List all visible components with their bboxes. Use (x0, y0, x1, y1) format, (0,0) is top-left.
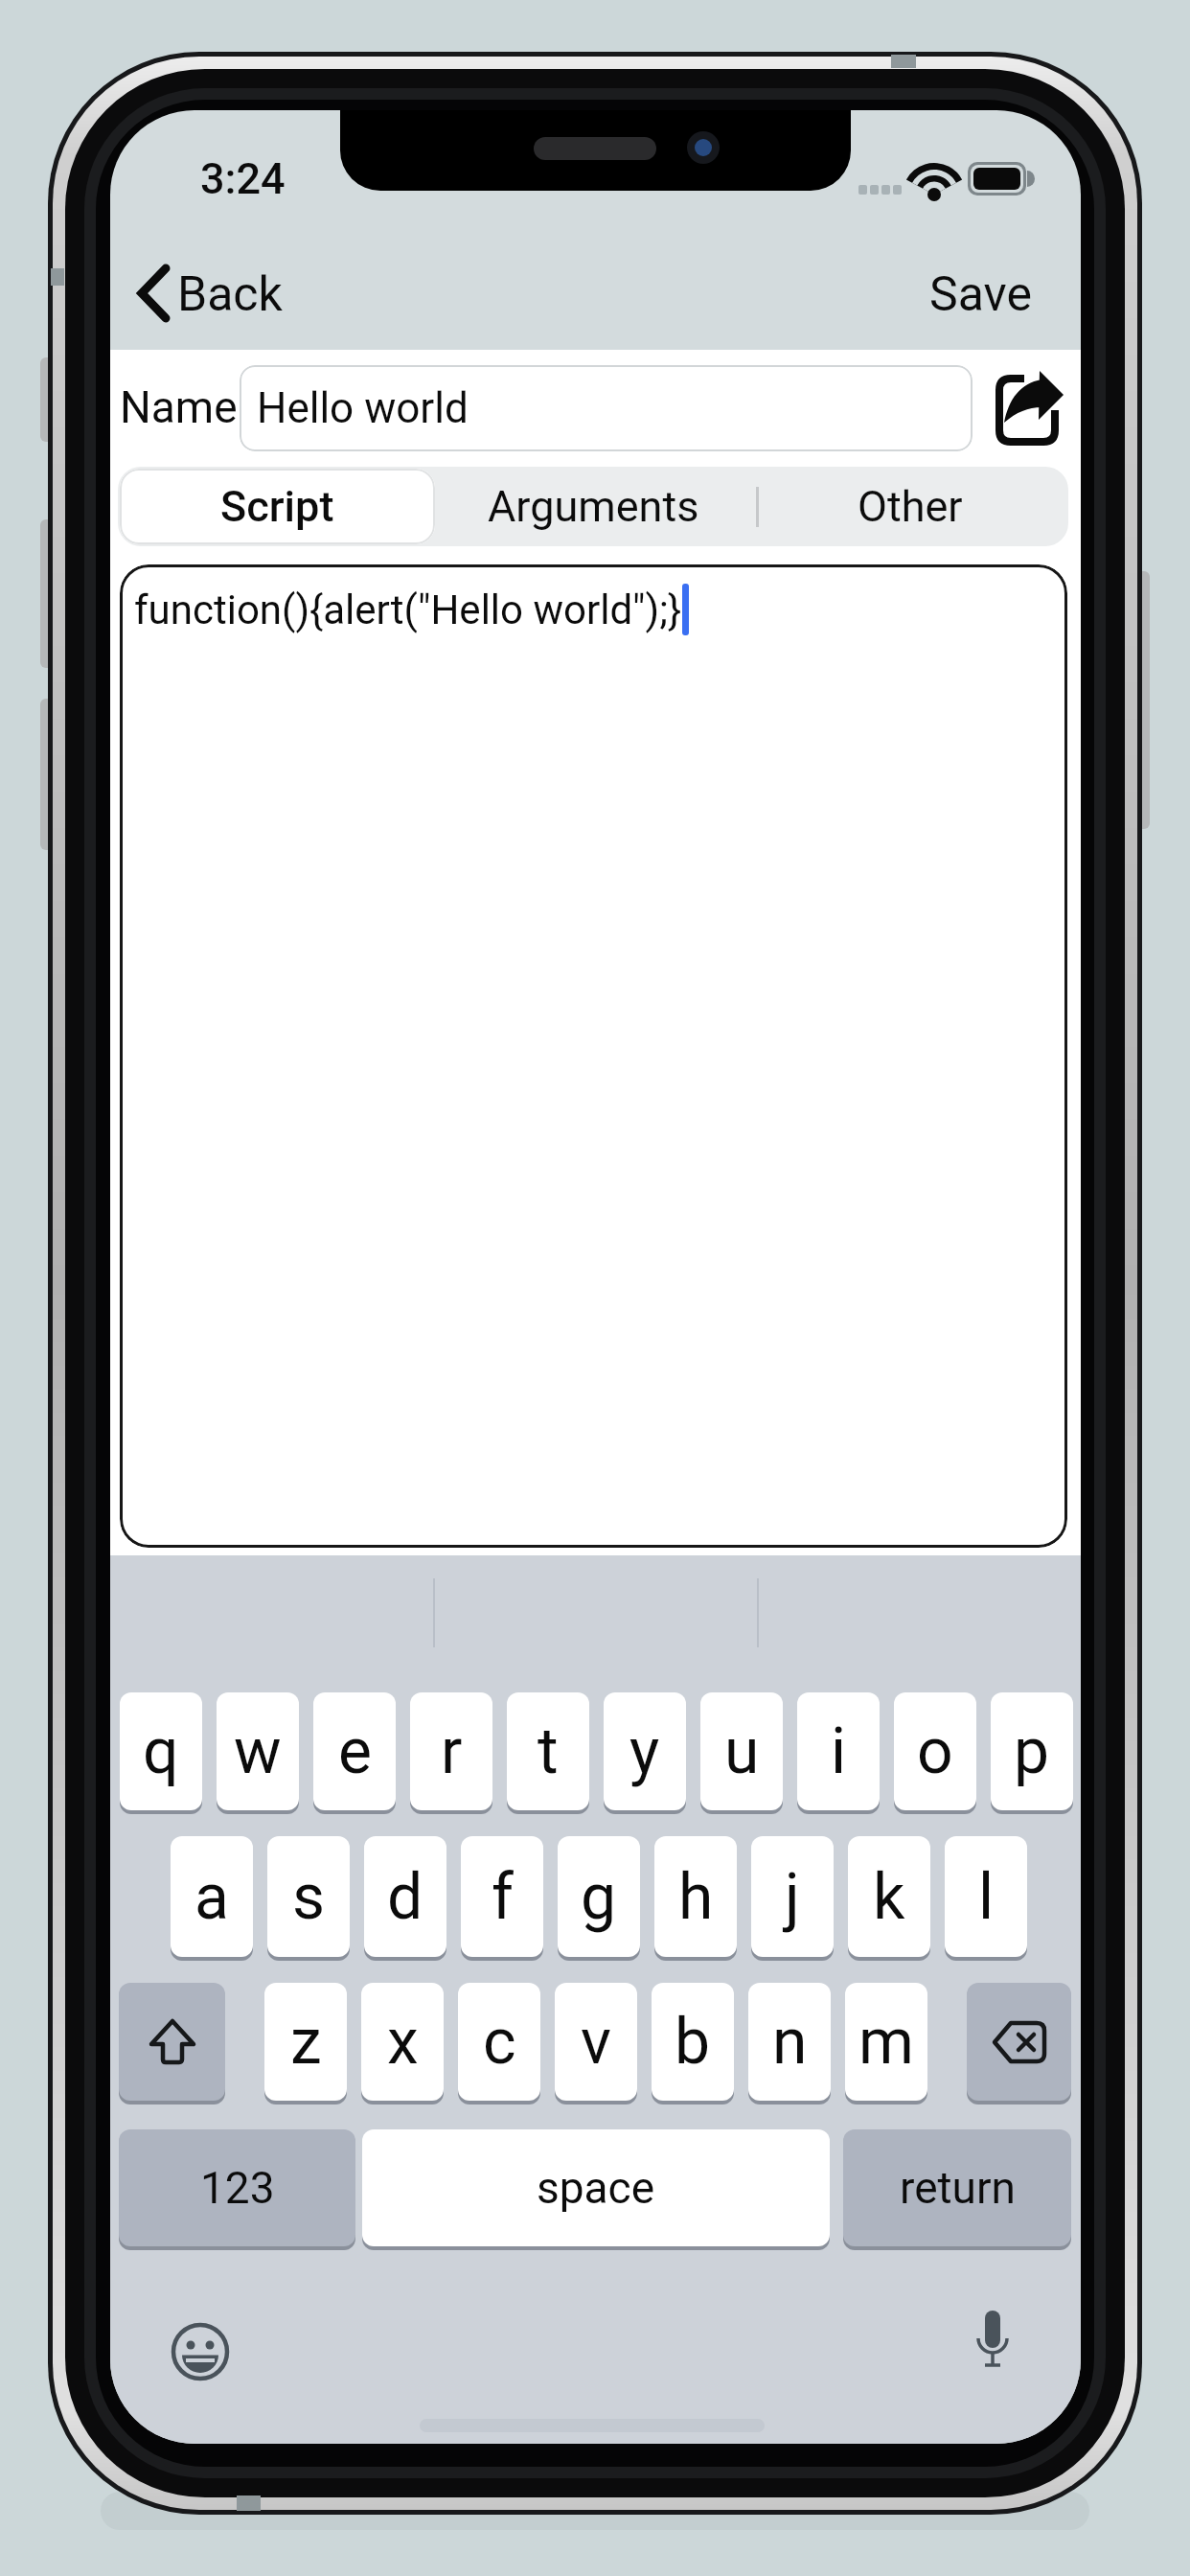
staticText: u (724, 1714, 760, 1788)
button[interactable]: a (171, 1836, 253, 1957)
button[interactable]: k (848, 1836, 930, 1957)
button[interactable]: t (507, 1692, 589, 1810)
staticText: m (858, 2005, 914, 2079)
button[interactable]: y (604, 1692, 686, 1810)
staticText: Arguments (488, 481, 699, 532)
staticText: space (537, 2162, 655, 2214)
staticText: e (338, 1714, 372, 1788)
staticText: return (900, 2162, 1016, 2214)
staticText: 3:24 (200, 153, 286, 203)
staticText: g (581, 1860, 617, 1934)
staticText: s (292, 1860, 326, 1934)
button[interactable]: j (751, 1836, 834, 1957)
button[interactable] (133, 262, 373, 325)
staticText: Save (929, 266, 1032, 320)
button[interactable] (170, 2321, 231, 2382)
button[interactable]: n (748, 1983, 831, 2101)
staticText: n (772, 2005, 808, 2079)
button[interactable] (967, 1983, 1071, 2101)
button[interactable]: h (654, 1836, 737, 1957)
staticText: Script (220, 481, 334, 532)
button[interactable]: return (843, 2129, 1071, 2246)
button[interactable]: g (558, 1836, 640, 1957)
button[interactable]: m (845, 1983, 927, 2101)
staticText: q (143, 1714, 179, 1788)
staticText: j (785, 1860, 800, 1934)
staticText: p (1014, 1714, 1050, 1788)
staticText: d (387, 1860, 423, 1934)
button[interactable]: d (364, 1836, 446, 1957)
button[interactable] (119, 1983, 225, 2101)
button[interactable]: Arguments (435, 469, 752, 544)
staticText: i (831, 1714, 847, 1788)
staticText: y (629, 1714, 660, 1788)
staticText: v (581, 2005, 611, 2079)
button[interactable]: o (894, 1692, 976, 1810)
staticText: h (678, 1860, 714, 1934)
staticText: Other (858, 481, 963, 532)
button[interactable]: b (652, 1983, 734, 2101)
button[interactable] (120, 564, 1067, 1548)
staticText: w (234, 1714, 282, 1788)
staticText: x (387, 2005, 419, 2079)
button[interactable]: p (991, 1692, 1073, 1810)
staticText: r (441, 1714, 463, 1788)
button[interactable]: v (555, 1983, 637, 2101)
button[interactable]: Other (752, 469, 1068, 544)
staticText: t (538, 1714, 559, 1788)
button[interactable]: 123 (119, 2129, 355, 2246)
button[interactable]: Save (840, 266, 1032, 320)
staticText: o (917, 1714, 953, 1788)
staticText: function(){alert("Hello world");} (134, 586, 682, 633)
staticText: 123 (200, 2162, 275, 2214)
button[interactable] (973, 2308, 1015, 2386)
staticText: b (675, 2005, 711, 2079)
button[interactable]: z (264, 1983, 347, 2101)
button[interactable]: e (313, 1692, 396, 1810)
staticText: k (873, 1860, 905, 1934)
staticText: Back (177, 266, 283, 320)
button[interactable]: q (120, 1692, 202, 1810)
button[interactable] (240, 365, 973, 451)
button[interactable]: l (945, 1836, 1027, 1957)
button[interactable] (135, 264, 172, 323)
button[interactable] (995, 374, 1068, 450)
staticText: z (290, 2005, 322, 2079)
staticText: c (483, 2005, 516, 2079)
button[interactable]: space (362, 2129, 830, 2246)
staticText: l (978, 1860, 995, 1934)
staticText: Hello world (257, 383, 469, 433)
staticText: Name (120, 381, 238, 431)
button[interactable]: i (797, 1692, 880, 1810)
staticText: a (195, 1860, 229, 1934)
button[interactable]: x (361, 1983, 444, 2101)
staticText: f (492, 1860, 514, 1934)
button[interactable]: f (461, 1836, 543, 1957)
button[interactable] (120, 469, 435, 544)
button[interactable]: r (410, 1692, 492, 1810)
button[interactable]: s (267, 1836, 350, 1957)
button[interactable]: c (458, 1983, 540, 2101)
button[interactable]: u (700, 1692, 783, 1810)
button[interactable]: w (217, 1692, 299, 1810)
